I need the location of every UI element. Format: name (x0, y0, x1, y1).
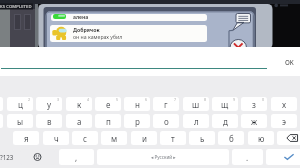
staticText: 2 (28, 97, 31, 102)
staticText: 5 (116, 97, 119, 102)
staticText: с (83, 133, 87, 144)
button[interactable]: ш (183, 97, 209, 111)
staticText: 4 (87, 97, 90, 102)
staticText: ц (18, 99, 23, 110)
button[interactable]: у (36, 97, 62, 111)
button[interactable]: х (271, 97, 297, 111)
staticText: н (135, 99, 140, 110)
staticText: я (24, 133, 29, 144)
button[interactable]: о (153, 114, 179, 128)
button[interactable]: . (232, 149, 263, 165)
button[interactable]: ◂ Русский ▸ (97, 149, 229, 165)
button[interactable]: Emoji (20, 149, 55, 165)
button[interactable]: Backspace (277, 131, 300, 145)
staticText: 7 (174, 97, 177, 102)
staticText: р (135, 116, 140, 127)
button[interactable]: п (95, 114, 121, 128)
staticText: д (223, 116, 228, 127)
button[interactable]: е (95, 97, 121, 111)
button[interactable]: OK (279, 55, 300, 69)
staticText: ?123 (0, 153, 14, 161)
button[interactable]: р (124, 114, 150, 128)
staticText: . (246, 152, 249, 163)
button[interactable]: и (131, 131, 157, 145)
button[interactable]: з (241, 97, 267, 111)
staticText: ж (251, 116, 258, 127)
button[interactable]: с (72, 131, 98, 145)
button[interactable] (0, 97, 3, 111)
staticText: 9 (233, 97, 236, 102)
staticText: алена (73, 14, 89, 21)
staticText: а (77, 116, 82, 127)
button[interactable]: ч (43, 131, 69, 145)
button[interactable]: в (36, 114, 62, 128)
staticText: е (106, 99, 111, 110)
staticText: з (252, 99, 256, 110)
button[interactable]: л (183, 114, 209, 128)
button[interactable]: а (66, 114, 92, 128)
staticText: 8 (204, 97, 207, 102)
staticText: б (229, 133, 234, 144)
button[interactable]: н (124, 97, 150, 111)
staticText: ш (192, 99, 200, 110)
staticText: и (142, 133, 147, 144)
staticText: о (164, 116, 169, 127)
staticText: , (75, 152, 78, 163)
button[interactable]: Chat (206, 11, 256, 47)
button[interactable]: Enter (266, 149, 300, 165)
button[interactable]: т (160, 131, 186, 145)
staticText: э (282, 116, 286, 127)
staticText: х (282, 99, 287, 110)
staticText: г (164, 99, 168, 110)
button[interactable]: ю (248, 131, 274, 145)
button[interactable]: , (59, 149, 94, 165)
button[interactable]: э (271, 114, 297, 128)
staticText: 0 (262, 97, 265, 102)
button[interactable]: щ (212, 97, 238, 111)
staticText: ю (258, 133, 265, 144)
button[interactable]: г (153, 97, 179, 111)
staticText: он на камерах убил (73, 33, 123, 40)
staticText: в (47, 116, 52, 127)
button[interactable]: б (218, 131, 244, 145)
button[interactable] (0, 114, 3, 128)
staticText: KS COMPLETED (0, 4, 32, 10)
staticText: к (77, 99, 82, 110)
staticText: OK (285, 58, 294, 66)
staticText: п (106, 116, 111, 127)
button[interactable]: я (13, 131, 39, 145)
staticText: ◂ Русский ▸ (151, 154, 176, 160)
staticText: щ (221, 99, 229, 110)
button[interactable]: к (66, 97, 92, 111)
staticText: Добрячок (73, 26, 100, 33)
staticText: ы (17, 116, 24, 127)
button[interactable]: ь (189, 131, 215, 145)
staticText: 3 (57, 97, 60, 102)
staticText: ч (54, 133, 59, 144)
button[interactable]: ?123 (0, 149, 14, 165)
button[interactable]: ж (241, 114, 267, 128)
button[interactable]: м (101, 131, 127, 145)
staticText: 6 (145, 97, 148, 102)
button[interactable]: ы (7, 114, 33, 128)
button[interactable]: ц (7, 97, 33, 111)
staticText: м (111, 133, 118, 144)
staticText: у (47, 99, 52, 110)
staticText: л (194, 116, 199, 127)
staticText: т (171, 133, 175, 144)
button[interactable]: д (212, 114, 238, 128)
staticText: ь (200, 133, 205, 144)
